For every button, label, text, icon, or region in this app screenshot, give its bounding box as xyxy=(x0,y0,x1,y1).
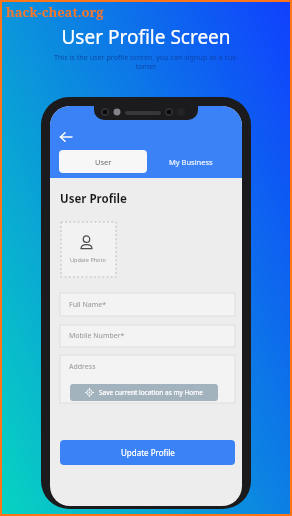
button[interactable]: User xyxy=(59,150,147,173)
button[interactable]: Back xyxy=(55,126,77,148)
staticText: Full Name* xyxy=(69,300,106,310)
button[interactable]: Address xyxy=(60,355,235,403)
button[interactable]: Mobile Number* xyxy=(60,325,235,347)
button[interactable]: My Business xyxy=(147,150,235,173)
staticText: User Profile xyxy=(60,191,127,207)
staticText: User Profile Screen xyxy=(0,24,292,50)
staticText: Save current location as my Home xyxy=(99,388,204,397)
staticText: Mobile Number* xyxy=(69,331,125,341)
button[interactable]: Save current location as my Home xyxy=(70,384,218,401)
staticText: Update Photo xyxy=(70,256,106,263)
staticText: User xyxy=(95,157,112,167)
staticText: Update Profile xyxy=(121,447,175,458)
staticText: This is the user profile screen, you can… xyxy=(0,52,292,71)
staticText: Address xyxy=(69,362,96,372)
button[interactable]: Update Photo xyxy=(61,222,116,277)
staticText: My Business xyxy=(169,157,213,167)
staticText: hack-cheat.org xyxy=(6,3,104,21)
button[interactable]: Full Name* xyxy=(60,293,235,316)
button[interactable]: Update Profile xyxy=(60,440,235,465)
